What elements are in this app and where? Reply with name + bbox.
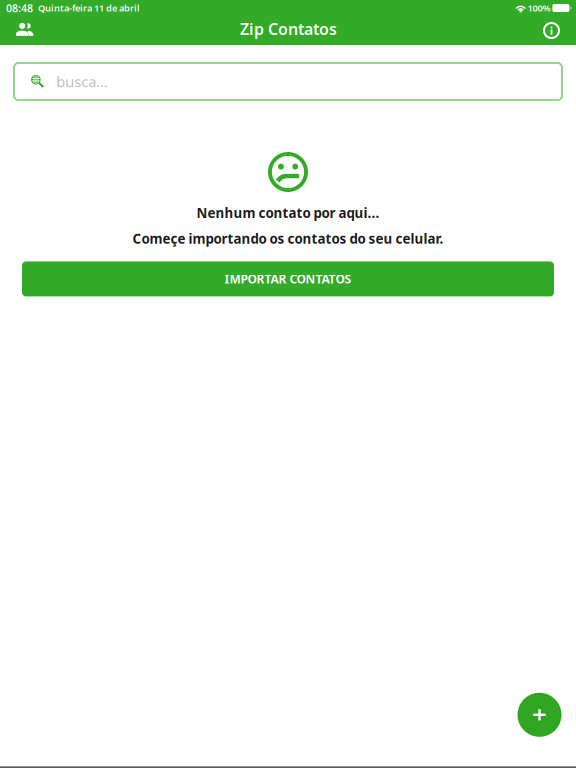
button[interactable]: busca… [14,63,562,100]
button[interactable]: Informações [533,16,573,45]
staticText: Nenhum contato por aqui... [196,204,379,222]
button[interactable]: IMPORTAR CONTATOS [22,261,554,296]
staticText: Começe importando os contatos do seu cel… [132,230,443,247]
staticText: 100% [527,2,550,14]
staticText: Zip Contatos [240,18,337,39]
staticText: busca… [56,72,108,91]
staticText: IMPORTAR CONTATOS [224,271,351,287]
button[interactable]: Adicionar contato [517,693,561,737]
staticText: 08:48 [6,1,33,15]
staticText: Quinta-feira 11 de abril [38,2,140,14]
button[interactable]: Grupos [3,16,44,45]
